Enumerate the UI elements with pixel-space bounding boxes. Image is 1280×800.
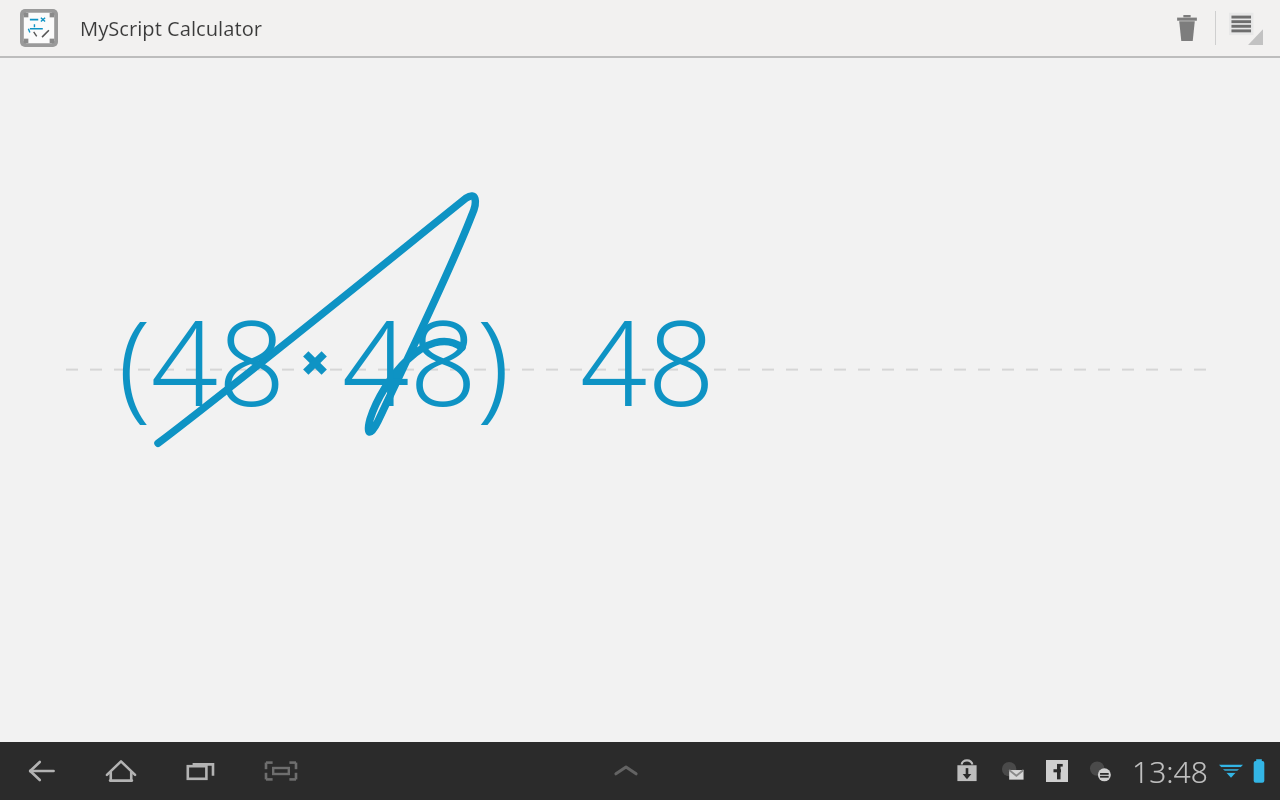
button[interactable]: Download complete [944, 748, 990, 794]
button[interactable]: MyScript Calculator [20, 9, 58, 47]
button[interactable]: More options [1216, 0, 1276, 56]
button[interactable]: Delete [1159, 0, 1215, 56]
staticText: (48 [118, 280, 286, 441]
staticText: MyScript Calculator [80, 15, 262, 42]
button[interactable]: Facebook notification [1036, 750, 1078, 792]
button[interactable]: Recent apps [174, 744, 228, 798]
button[interactable]: Mail notification [990, 748, 1036, 794]
button[interactable]: Messenger notification [1078, 748, 1124, 794]
staticText: 13:48 [1132, 751, 1208, 792]
button[interactable]: Expand status bar [599, 744, 653, 798]
staticText: 48) [342, 280, 510, 441]
button[interactable]: Home [94, 744, 148, 798]
button[interactable]: Screenshot [254, 744, 308, 798]
button[interactable]: Back [14, 744, 68, 798]
staticText: 48 [580, 280, 715, 441]
